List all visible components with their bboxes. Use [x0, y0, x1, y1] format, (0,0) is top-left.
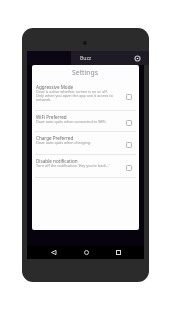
button[interactable]: Back [46, 246, 60, 259]
staticText: Turn off the notification 'Hey you're ba… [36, 163, 110, 168]
button[interactable]: WiFi Preferred [32, 111, 139, 132]
staticText: Buzz [80, 55, 92, 62]
staticText: Aggressive Mode [36, 84, 74, 90]
button[interactable]: Recents [111, 246, 125, 259]
button[interactable]: Aggressive Mode [32, 80, 139, 111]
button[interactable]: Disable notification [32, 155, 139, 178]
staticText: Charge Preferred [36, 135, 74, 141]
button[interactable]: Charge Preferred [32, 132, 139, 155]
button[interactable]: Home [79, 246, 93, 259]
staticText: Doze auto quits when charging. [36, 140, 91, 145]
staticText: Settings [72, 68, 98, 77]
staticText: Doze is active whether screen is on or o… [36, 89, 113, 102]
staticText: WiFi Preferred [36, 114, 67, 120]
button[interactable]: Settings [133, 54, 141, 62]
staticText: Disable notification [36, 158, 78, 164]
staticText: Doze auto quits when connected to WiFi. [36, 119, 107, 124]
